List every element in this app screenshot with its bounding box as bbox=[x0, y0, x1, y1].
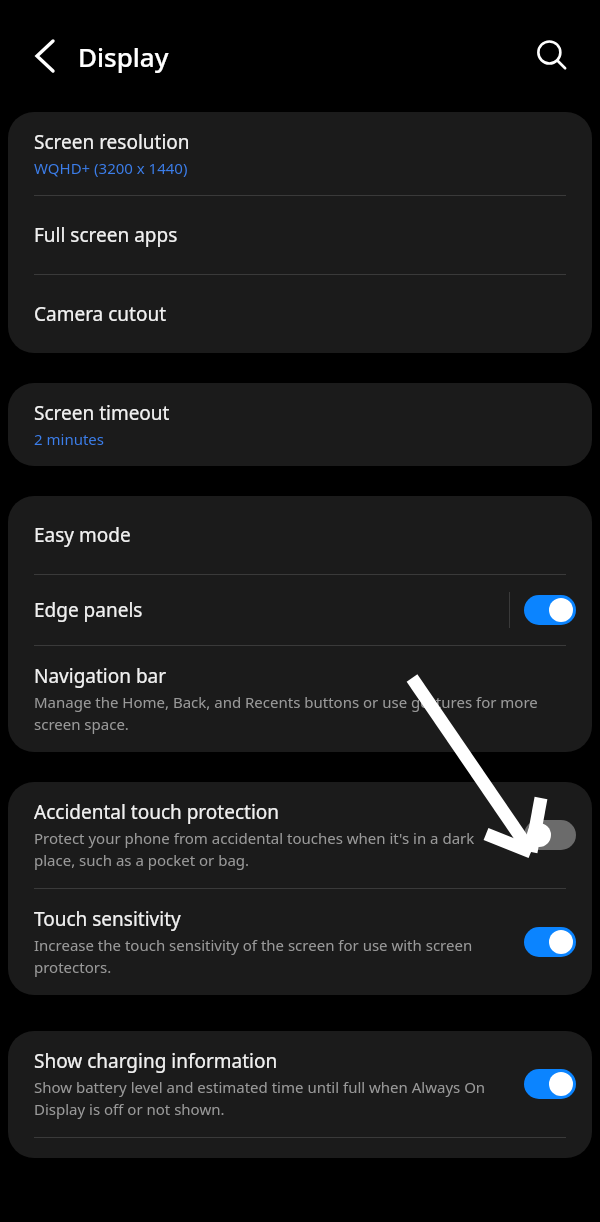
button[interactable]: Full screen apps bbox=[8, 196, 592, 274]
button[interactable]: Screen resolution bbox=[8, 112, 592, 195]
staticText: Increase the touch sensitivity of the sc… bbox=[34, 935, 514, 978]
staticText: Full screen apps bbox=[34, 222, 178, 248]
button[interactable]: Back bbox=[22, 33, 68, 79]
staticText: 2 minutes bbox=[34, 429, 104, 449]
button[interactable]: Show charging information bbox=[8, 1031, 592, 1137]
button[interactable]: Switch on bbox=[524, 595, 576, 625]
staticText: Touch sensitivity bbox=[34, 906, 181, 932]
staticText: Manage the Home, Back, and Recents butto… bbox=[34, 692, 576, 735]
staticText: Protect your phone from accidental touch… bbox=[34, 828, 514, 871]
staticText: Display bbox=[78, 39, 169, 74]
staticText: Easy mode bbox=[34, 522, 131, 548]
button[interactable]: Navigation bar bbox=[8, 646, 592, 752]
staticText: Show charging information bbox=[34, 1048, 278, 1074]
button[interactable]: Easy mode bbox=[8, 496, 592, 574]
button[interactable]: Screen timeout bbox=[8, 383, 592, 466]
staticText: Camera cutout bbox=[34, 301, 167, 327]
button[interactable]: Touch sensitivity bbox=[8, 889, 592, 995]
staticText: Navigation bar bbox=[34, 663, 167, 689]
staticText: WQHD+ (3200 x 1440) bbox=[34, 158, 188, 178]
staticText: Show battery level and estimated time un… bbox=[34, 1077, 514, 1120]
staticText: Screen resolution bbox=[34, 129, 190, 155]
button[interactable]: Switch on bbox=[524, 1069, 576, 1099]
button[interactable]: Accidental touch protection bbox=[8, 782, 592, 888]
staticText: Screen timeout bbox=[34, 400, 170, 426]
button[interactable]: Switch off bbox=[524, 820, 576, 850]
button[interactable]: Switch on bbox=[524, 927, 576, 957]
button[interactable]: Camera cutout bbox=[8, 275, 592, 353]
staticText: Edge panels bbox=[34, 597, 143, 623]
button[interactable]: Edge panels bbox=[8, 575, 592, 645]
staticText: Accidental touch protection bbox=[34, 799, 280, 825]
button[interactable]: Search bbox=[530, 34, 574, 78]
